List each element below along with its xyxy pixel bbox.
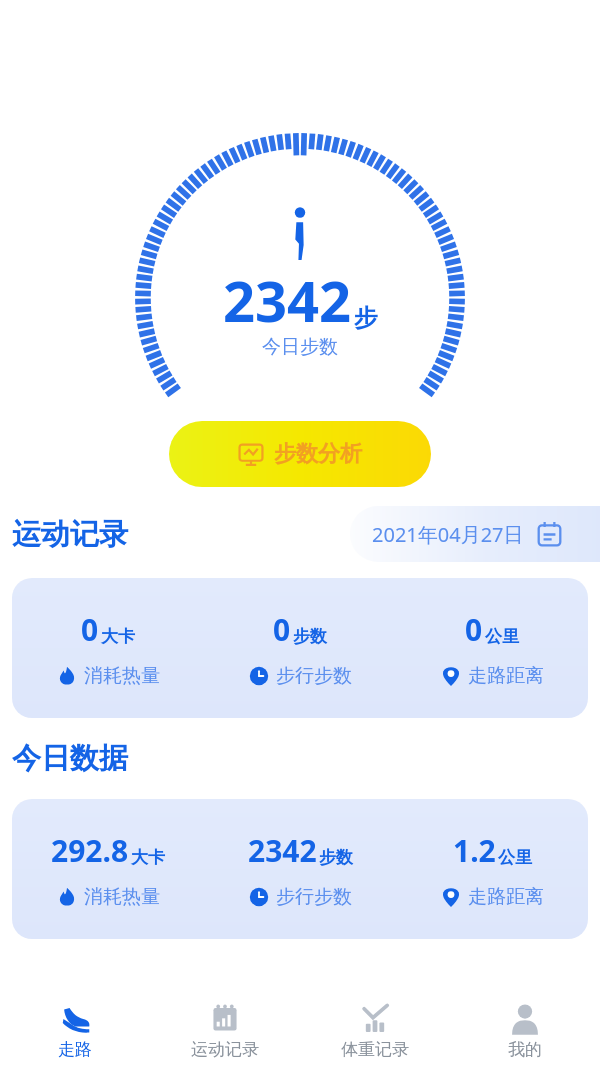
staticText: 走路: [58, 1039, 92, 1060]
staticText: 2342: [248, 830, 317, 871]
staticText: 公里: [498, 847, 532, 868]
staticText: 我的: [508, 1039, 542, 1060]
staticText: 2342: [223, 262, 352, 338]
staticText: 0: [273, 609, 291, 650]
staticText: 公里: [485, 626, 519, 647]
staticText: 0: [81, 609, 99, 650]
staticText: 大卡: [131, 847, 165, 868]
staticText: 走路距离: [468, 885, 544, 909]
staticText: 今日数据: [12, 740, 128, 777]
staticText: 消耗热量: [84, 664, 160, 688]
button[interactable]: 步数分析: [169, 421, 431, 487]
staticText: 体重记录: [341, 1039, 409, 1060]
staticText: 1.2: [453, 830, 496, 871]
staticText: 消耗热量: [84, 885, 160, 909]
staticText: 今日步数: [262, 335, 338, 359]
button[interactable]: 0: [12, 578, 588, 718]
staticText: 走路距离: [468, 664, 544, 688]
button[interactable]: 体重记录: [300, 995, 450, 1067]
staticText: 步: [354, 303, 378, 333]
staticText: 步行步数: [276, 885, 352, 909]
staticText: 步数: [293, 626, 327, 647]
staticText: 步数分析: [274, 440, 362, 468]
button[interactable]: 走路: [0, 995, 150, 1067]
staticText: 步数: [319, 847, 353, 868]
staticText: 步行步数: [276, 664, 352, 688]
button[interactable]: 运动记录: [150, 995, 300, 1067]
button[interactable]: 2021年04月27日: [350, 506, 600, 562]
button[interactable]: 292.8: [12, 799, 588, 939]
staticText: 运动记录: [12, 516, 128, 553]
staticText: 运动记录: [191, 1039, 259, 1060]
staticText: 大卡: [101, 626, 135, 647]
staticText: 2021年04月27日: [372, 521, 524, 548]
staticText: 0: [465, 609, 483, 650]
button[interactable]: 我的: [450, 995, 600, 1067]
staticText: 292.8: [51, 830, 129, 871]
